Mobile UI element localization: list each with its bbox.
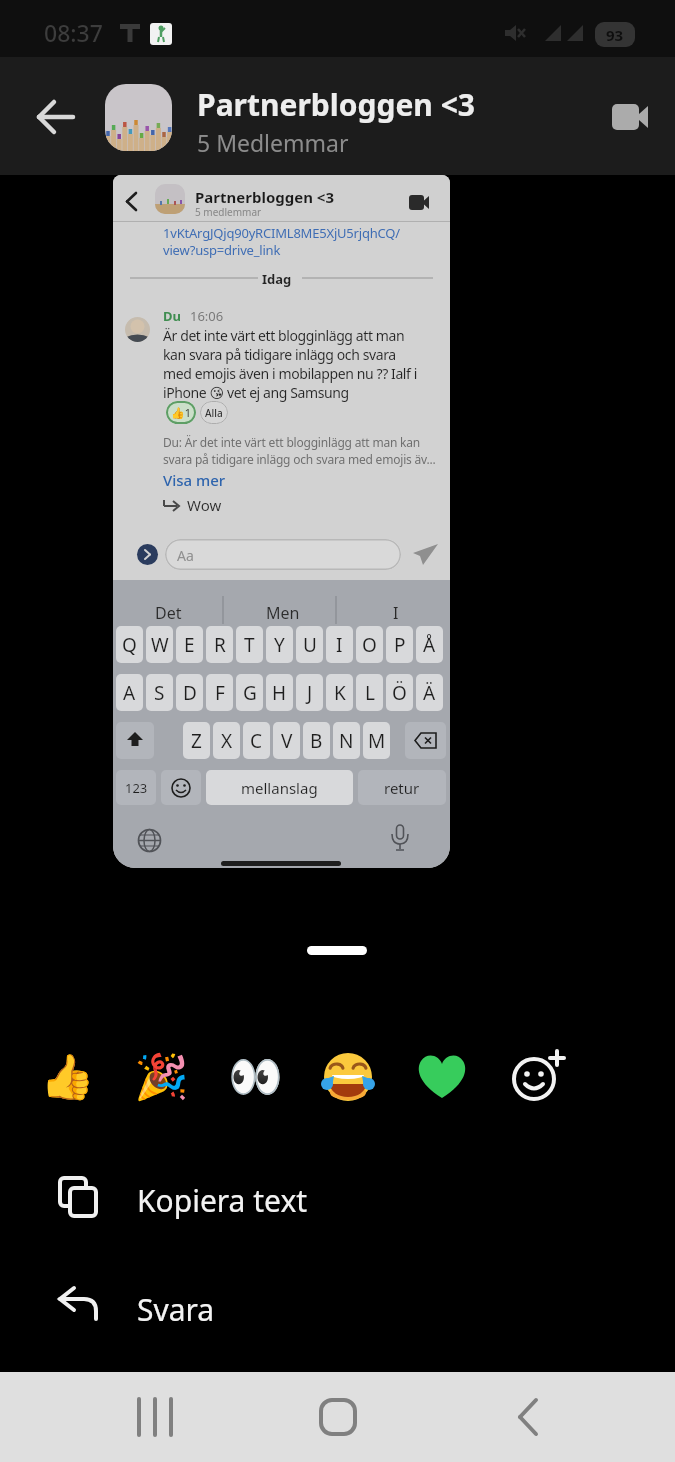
staticText: 5 Medlemmar	[197, 127, 349, 158]
staticText: R	[214, 632, 226, 658]
staticText: view?usp=drive_link	[163, 241, 281, 259]
staticText: Idag	[262, 270, 292, 288]
button[interactable]	[595, 89, 665, 145]
staticText: J	[307, 680, 313, 706]
button[interactable]	[507, 1047, 567, 1107]
staticText: Du: Är det inte värt ett blogginlägg att…	[163, 434, 421, 450]
button[interactable]: 🎉	[131, 1047, 191, 1107]
button[interactable]	[275, 1372, 400, 1462]
staticText: Visa mer	[163, 470, 226, 490]
staticText: H	[272, 680, 287, 706]
staticText: I	[336, 632, 343, 658]
staticText: 5 medlemmar	[195, 205, 262, 219]
staticText: Y	[274, 632, 285, 658]
staticText: T	[244, 632, 255, 658]
staticText: 123	[125, 779, 148, 797]
staticText: Alla	[205, 406, 223, 420]
staticText: W	[151, 632, 169, 658]
button[interactable]: Svara	[0, 1262, 675, 1344]
staticText: A	[123, 680, 136, 706]
staticText: Q	[122, 632, 137, 658]
staticText: Är det inte värt ett blogginlägg att man	[163, 326, 405, 345]
staticText: Kopiera text	[137, 1180, 308, 1221]
staticText: L	[365, 680, 375, 706]
staticText: svara på tidigare inlägg och svara med e…	[163, 451, 436, 467]
staticText: B	[310, 728, 323, 754]
staticText: iPhone 😘 vet ej ang Samsung	[163, 383, 349, 402]
staticText: 16:06	[190, 307, 224, 325]
staticText: Ä	[423, 680, 436, 706]
staticText: U	[303, 632, 317, 658]
staticText: Du	[163, 307, 181, 325]
staticText: Aa	[177, 546, 194, 565]
staticText: 🎉	[134, 1051, 189, 1103]
staticText: P	[394, 632, 406, 658]
staticText: F	[215, 680, 225, 706]
staticText: K	[334, 680, 346, 706]
button[interactable]	[465, 1372, 590, 1462]
button[interactable]	[318, 1047, 378, 1107]
staticText: kan svara på tidigare inlägg och svara	[163, 345, 396, 364]
staticText: E	[184, 632, 195, 658]
staticText: Wow	[187, 495, 222, 515]
staticText: 1vKtArgJQjq90yRCIML8ME5XjU5rjqhCQ/	[163, 224, 400, 242]
staticText: Men	[266, 602, 300, 624]
staticText: 👍	[40, 1051, 95, 1103]
button[interactable]: Kopiera text	[0, 1158, 675, 1240]
staticText: D	[183, 680, 197, 706]
button[interactable]	[26, 87, 86, 147]
button[interactable]	[92, 1372, 217, 1462]
staticText: 👍1	[171, 405, 191, 420]
staticText: N	[339, 728, 354, 754]
staticText: Partnerbloggen <3	[197, 84, 475, 125]
staticText: Svara	[137, 1289, 215, 1330]
staticText: 08:37	[44, 17, 103, 48]
staticText: 93	[606, 25, 624, 45]
staticText: Det	[155, 602, 182, 624]
staticText: retur	[384, 778, 420, 798]
staticText: G	[243, 680, 257, 706]
staticText: med emojis även i mobilappen nu ?? Ialf …	[163, 364, 417, 383]
staticText: C	[250, 728, 263, 754]
button[interactable]	[412, 1047, 472, 1107]
staticText: Å	[423, 632, 436, 658]
staticText: I	[393, 602, 399, 624]
staticText: Ö	[392, 680, 407, 706]
staticText: Z	[191, 728, 202, 754]
staticText: S	[154, 680, 165, 706]
button[interactable]: 👀	[225, 1047, 285, 1107]
staticText: X	[221, 728, 233, 754]
staticText: mellanslag	[241, 778, 318, 798]
staticText: M	[368, 728, 386, 754]
staticText: O	[362, 632, 377, 658]
staticText: Partnerbloggen <3	[195, 187, 334, 207]
staticText: V	[281, 728, 293, 754]
staticText: 👀	[228, 1051, 283, 1103]
button[interactable]: 👍	[37, 1047, 97, 1107]
